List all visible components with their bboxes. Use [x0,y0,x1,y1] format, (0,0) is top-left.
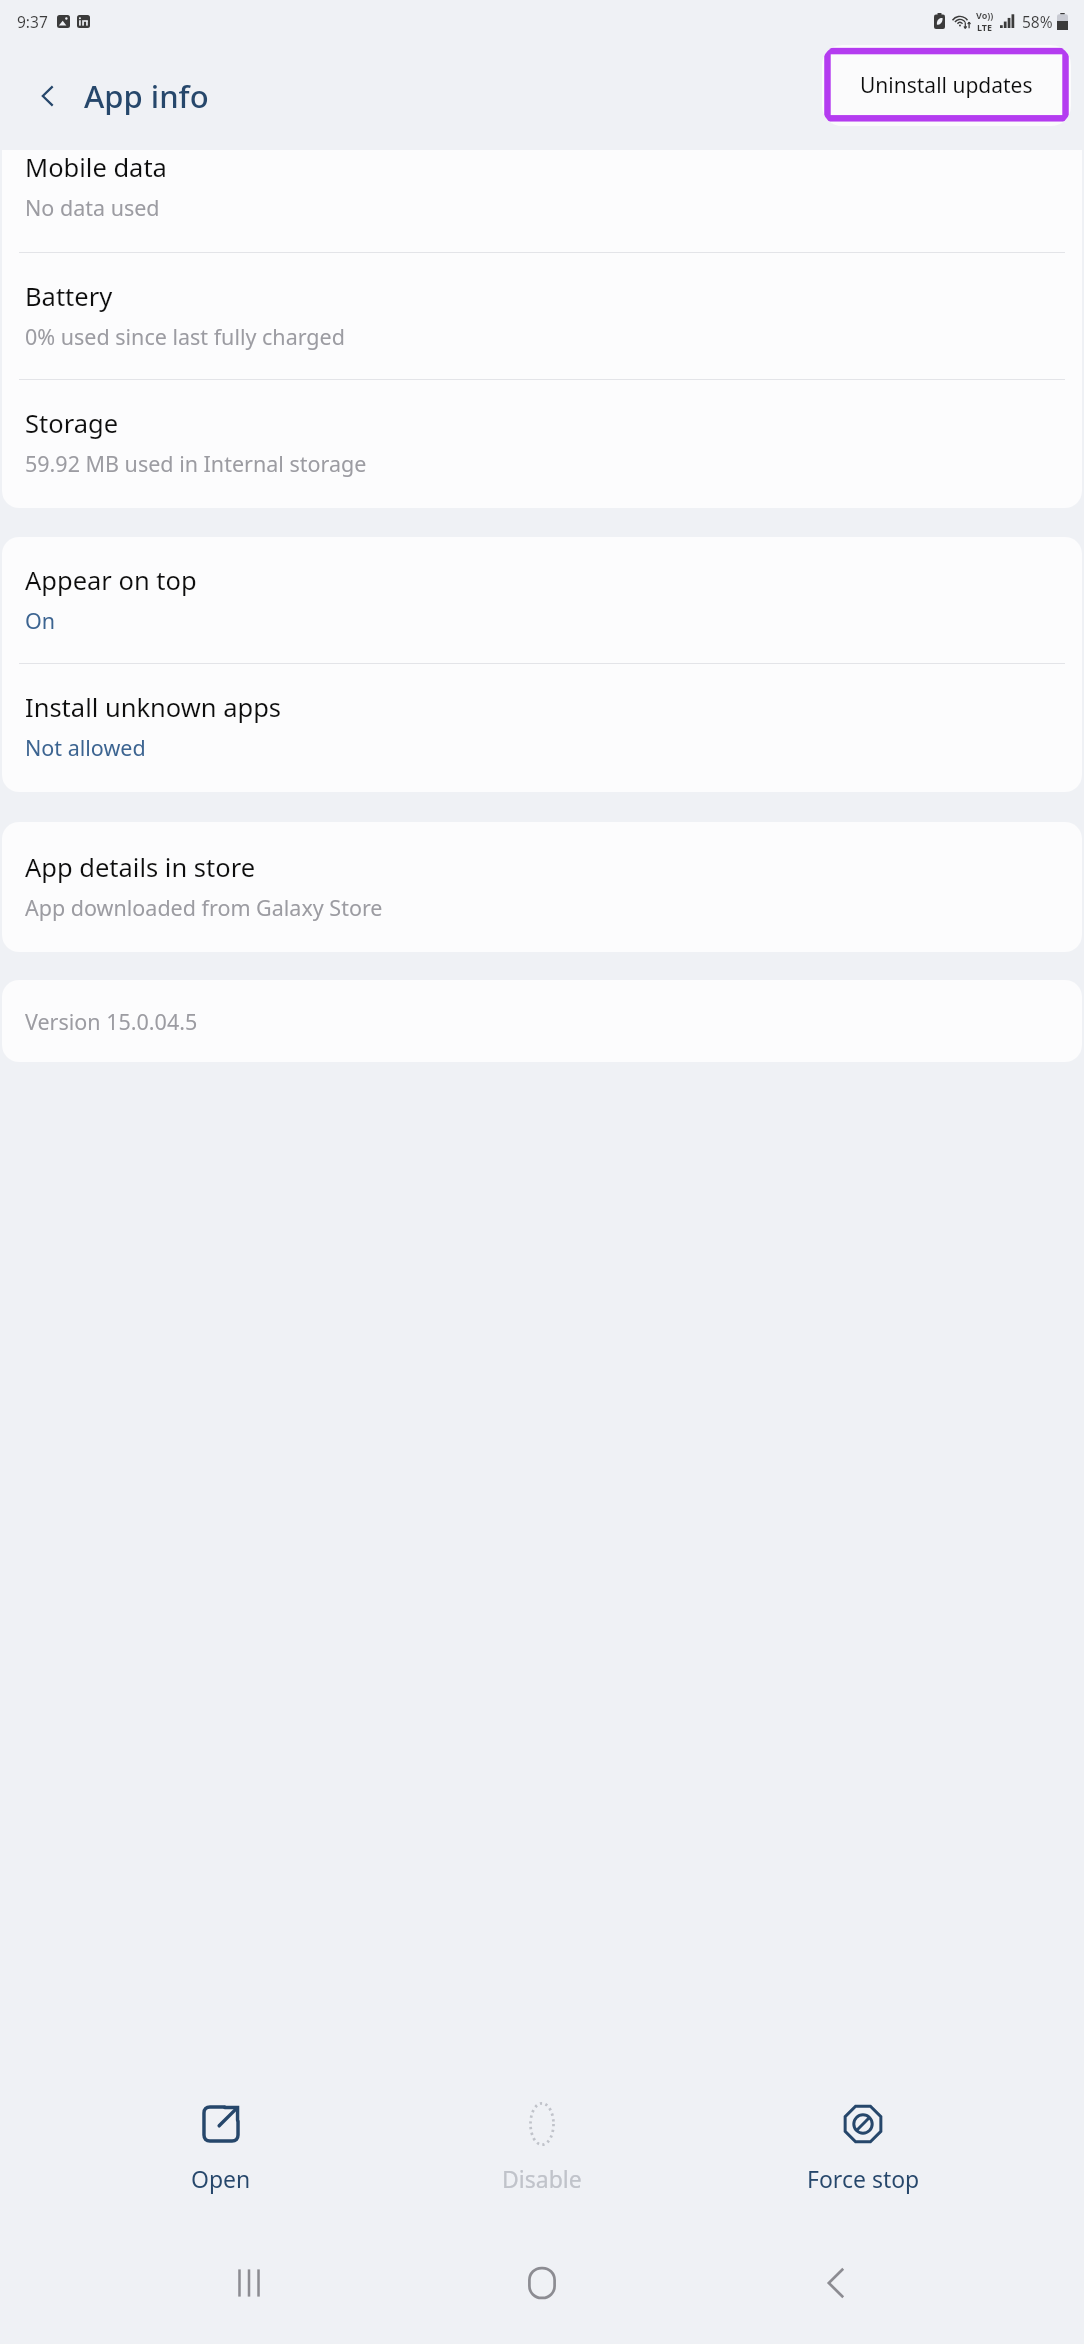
button[interactable]: Home [497,2238,587,2328]
staticText: Vo)) [976,9,994,21]
button[interactable]: Install unknown apps [2,664,1082,792]
staticText: App details in store [25,850,256,885]
staticText: 58% [1022,11,1053,32]
button[interactable]: Open [121,2095,321,2200]
button[interactable]: Appear on top [2,537,1082,663]
staticText: Not allowed [25,733,146,762]
button[interactable]: Recent apps [204,2238,294,2328]
staticText: App info [84,75,209,117]
button[interactable]: Back [791,2238,881,2328]
button[interactable]: Mobile data [2,150,1082,252]
staticText: Force stop [807,2163,920,2194]
staticText: Appear on top [25,563,197,598]
staticText: Mobile data [25,150,167,185]
staticText: Uninstall updates [860,71,1033,100]
staticText: 9:37 [17,11,48,32]
button[interactable]: Uninstall updates [822,45,1071,126]
staticText: No data used [25,193,160,222]
button[interactable]: Back [20,68,76,124]
staticText: Storage [25,406,119,441]
button[interactable]: Force stop [763,2095,963,2200]
staticText: Disable [502,2163,582,2194]
staticText: Install unknown apps [25,690,282,725]
button[interactable]: Storage [2,380,1082,508]
staticText: Open [191,2163,251,2194]
staticText: On [25,606,56,635]
staticText: LTE [977,21,993,33]
staticText: 59.92 MB used in Internal storage [25,449,367,478]
staticText: Version 15.0.04.5 [25,1007,198,1036]
staticText: 0% used since last fully charged [25,322,345,351]
button[interactable]: App details in store [2,822,1082,952]
staticText: App downloaded from Galaxy Store [25,893,383,922]
button[interactable]: Disable [442,2095,642,2200]
staticText: Battery [25,279,113,314]
button[interactable]: Battery [2,253,1082,379]
button[interactable]: Version 15.0.04.5 [2,980,1082,1062]
